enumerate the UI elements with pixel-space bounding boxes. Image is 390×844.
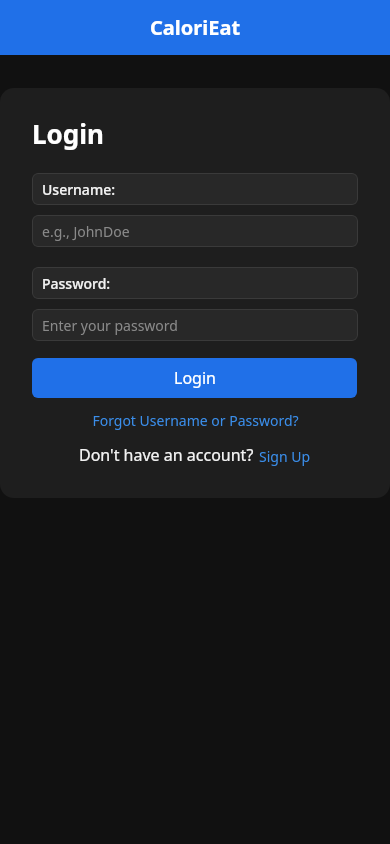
- staticText: Enter your password: [42, 316, 178, 335]
- button[interactable]: Forgot Username or Password?: [32, 411, 358, 430]
- staticText: Sign Up: [259, 447, 311, 466]
- staticText: Login: [174, 367, 216, 389]
- staticText: Password:: [42, 274, 111, 293]
- button[interactable]: Username:: [32, 173, 358, 205]
- staticText: Username:: [42, 180, 115, 199]
- button[interactable]: Sign Up: [259, 447, 311, 466]
- staticText: CaloriEat: [150, 14, 241, 41]
- button[interactable]: Login: [32, 358, 357, 398]
- button[interactable]: e.g., JohnDoe: [32, 215, 358, 247]
- button[interactable]: Enter your password: [32, 309, 358, 341]
- button[interactable]: Password:: [32, 267, 358, 299]
- staticText: Don't have an account?: [79, 444, 254, 466]
- staticText: Forgot Username or Password?: [92, 411, 299, 430]
- staticText: e.g., JohnDoe: [42, 222, 130, 241]
- staticText: Login: [32, 116, 104, 151]
